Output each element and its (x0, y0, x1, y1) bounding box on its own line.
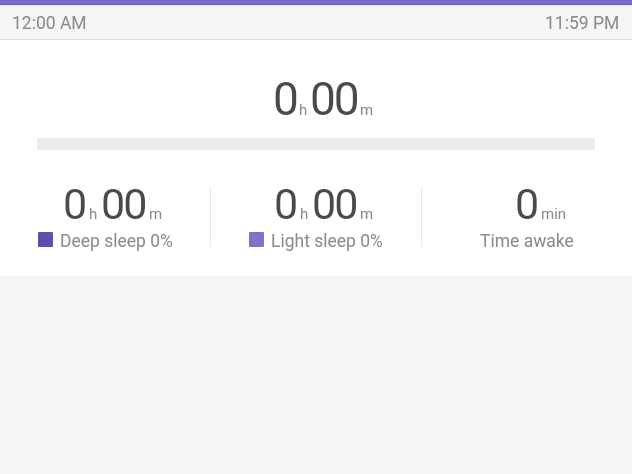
staticText: h (89, 205, 98, 223)
button[interactable]: 0 (0, 179, 210, 276)
staticText: 11:59 PM (545, 13, 620, 34)
staticText: Deep sleep 0% (60, 231, 173, 252)
staticText: Time awake (480, 231, 574, 252)
staticText: 0 (274, 179, 297, 229)
staticText: 0 (63, 179, 86, 229)
staticText: h (299, 101, 308, 119)
staticText: min (541, 205, 567, 223)
staticText: Light sleep 0% (271, 231, 383, 252)
staticText: m (149, 205, 163, 223)
staticText: 00 (101, 179, 146, 229)
staticText: m (360, 205, 374, 223)
staticText: 0 (273, 72, 297, 126)
staticText: m (360, 101, 374, 119)
staticText: 0 (515, 179, 538, 229)
staticText: 00 (312, 179, 357, 229)
button[interactable]: 0 (422, 179, 632, 276)
button[interactable]: 0 (211, 179, 421, 276)
staticText: h (300, 205, 309, 223)
staticText: 00 (310, 72, 358, 126)
staticText: 12:00 AM (12, 13, 87, 34)
